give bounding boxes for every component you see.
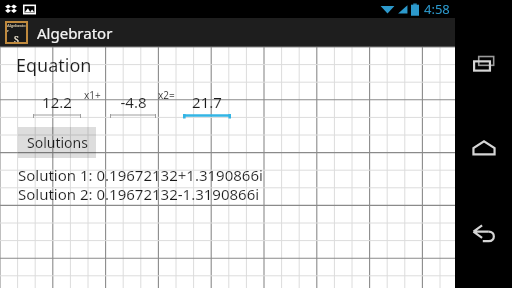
button[interactable]: 21.7	[183, 92, 231, 119]
button[interactable]: App icon	[7, 23, 26, 42]
button[interactable]: Solutions	[18, 127, 96, 158]
button[interactable]: Recent apps	[460, 40, 508, 88]
staticText: x1+	[84, 88, 101, 102]
button[interactable]: Back	[460, 210, 508, 258]
staticText: Solution 2: 0.19672132-1.3190866i	[18, 184, 260, 204]
staticText: 4:58	[424, 0, 450, 18]
staticText: Solution 1: 0.19672132+1.3190866i	[18, 165, 263, 185]
staticText: Solutions	[27, 133, 88, 152]
staticText: 12.2	[42, 92, 72, 112]
staticText: Algebrator	[37, 23, 113, 43]
button[interactable]: 12.2	[33, 92, 81, 119]
staticText: -4.8	[120, 92, 147, 112]
button[interactable]: -4.8	[110, 92, 156, 119]
staticText: Algebrator	[7, 23, 26, 33]
button[interactable]: Home	[460, 125, 508, 173]
staticText: Equation	[16, 53, 92, 78]
staticText: S	[14, 33, 19, 42]
staticText: x2=	[158, 88, 175, 102]
staticText: 21.7	[192, 92, 222, 112]
